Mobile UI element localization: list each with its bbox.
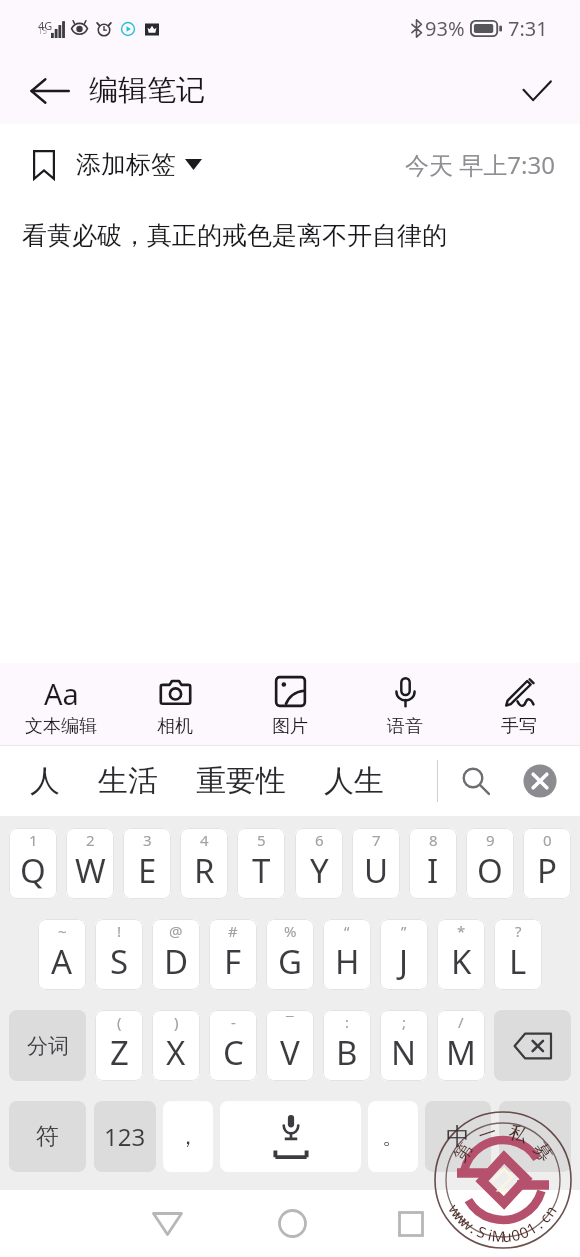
button[interactable]: # [209, 919, 257, 990]
staticText: G [278, 939, 303, 984]
button[interactable]: 中 [425, 1101, 491, 1172]
staticText: 人 [30, 762, 60, 800]
button[interactable]: 添加标签 [33, 149, 202, 180]
button[interactable]: 5 [237, 828, 285, 899]
button[interactable]: 人 [30, 762, 60, 800]
button[interactable]: Backspace [494, 1010, 571, 1081]
staticText: 0 [543, 830, 552, 850]
button[interactable]: : [323, 1010, 371, 1081]
staticText: O [477, 848, 503, 893]
button[interactable]: Search [448, 753, 504, 809]
button[interactable]: 4 [180, 828, 228, 899]
button[interactable]: Save [506, 60, 568, 122]
staticText: X [166, 1030, 186, 1075]
button[interactable]: 9 [466, 828, 514, 899]
staticText: 。 [382, 1123, 404, 1151]
staticText: ， [177, 1123, 199, 1151]
staticText: 今天 早上7:30 [405, 148, 555, 181]
staticText: P [537, 848, 557, 893]
staticText: 15 [38, 25, 48, 36]
staticText: ( [117, 1012, 122, 1032]
button[interactable]: - [209, 1010, 257, 1081]
staticText: % [284, 921, 297, 941]
staticText: 人生 [324, 762, 384, 800]
button[interactable]: ， [163, 1101, 213, 1172]
staticText: / [458, 1012, 464, 1032]
button[interactable]: “ [323, 919, 371, 990]
staticText: 看黄必破，真正的戒色是离不开自律的 [22, 220, 447, 251]
staticText: S [110, 939, 129, 984]
button[interactable]: % [266, 919, 314, 990]
button[interactable]: 手写 [465, 671, 573, 738]
staticText: J [399, 939, 409, 984]
staticText: V [280, 1030, 300, 1075]
button[interactable]: ¯ [266, 1010, 314, 1081]
staticText: E [138, 848, 157, 893]
button[interactable]: ? [494, 919, 542, 990]
staticText: 9 [486, 830, 495, 850]
button[interactable]: Home [249, 1190, 335, 1257]
button[interactable]: ) [152, 1010, 200, 1081]
button[interactable]: Aa [7, 671, 115, 738]
button[interactable]: 。 [368, 1101, 418, 1172]
button[interactable]: * [437, 919, 485, 990]
button[interactable]: 分词 [9, 1010, 86, 1081]
staticText: 分词 [27, 1033, 69, 1059]
button[interactable]: 3 [123, 828, 171, 899]
staticText: Y [310, 848, 329, 893]
staticText: T [252, 848, 271, 893]
staticText: : [345, 1012, 350, 1032]
staticText: Z [110, 1030, 129, 1075]
staticText: 手写 [501, 715, 537, 738]
button[interactable]: 123 [94, 1101, 156, 1172]
button[interactable]: Space [220, 1101, 361, 1172]
staticText: 5 [257, 830, 266, 850]
staticText: 图片 [272, 715, 308, 738]
button[interactable]: 2 [66, 828, 114, 899]
button[interactable]: Close [512, 753, 568, 809]
staticText: I [427, 848, 439, 893]
button[interactable]: 图片 [236, 671, 344, 738]
staticText: 语音 [387, 715, 423, 738]
button[interactable]: 0 [523, 828, 571, 899]
staticText: 重要性 [196, 762, 286, 800]
staticText: Q [20, 848, 46, 893]
button[interactable]: 相机 [121, 671, 229, 738]
button[interactable]: / [437, 1010, 485, 1081]
staticText: L [509, 939, 527, 984]
staticText: # [228, 921, 238, 941]
button[interactable]: ~ [38, 919, 86, 990]
button[interactable]: 符 [9, 1101, 86, 1172]
staticText: ¯ [286, 1012, 294, 1032]
button[interactable]: 生活 [98, 762, 158, 800]
staticText: K [451, 939, 472, 984]
button[interactable]: 8 [409, 828, 457, 899]
staticText: 93% [425, 15, 465, 42]
button[interactable]: ” [380, 919, 428, 990]
button[interactable]: ! [95, 919, 143, 990]
button[interactable]: Recents [368, 1190, 454, 1257]
button[interactable]: 人生 [324, 762, 384, 800]
staticText: 1 [29, 830, 38, 850]
staticText: D [164, 939, 189, 984]
button[interactable]: ; [380, 1010, 428, 1081]
staticText: 7:31 [508, 15, 548, 42]
button[interactable]: @ [152, 919, 200, 990]
staticText: R [194, 848, 215, 893]
staticText: 3 [143, 830, 152, 850]
staticText: “ [344, 921, 350, 941]
button[interactable]: 语音 [351, 671, 459, 738]
button[interactable] [499, 1101, 571, 1172]
button[interactable]: 重要性 [196, 762, 286, 800]
staticText: 123 [104, 1120, 146, 1153]
staticText: A [51, 939, 73, 984]
button[interactable]: Back [124, 1190, 210, 1257]
button[interactable]: 6 [295, 828, 343, 899]
button[interactable]: 7 [352, 828, 400, 899]
button[interactable]: Back [18, 60, 80, 122]
button[interactable]: ( [95, 1010, 143, 1081]
button[interactable]: 1 [9, 828, 57, 899]
staticText: F [224, 939, 242, 984]
staticText: C [223, 1030, 244, 1075]
staticText: ? [515, 921, 522, 941]
